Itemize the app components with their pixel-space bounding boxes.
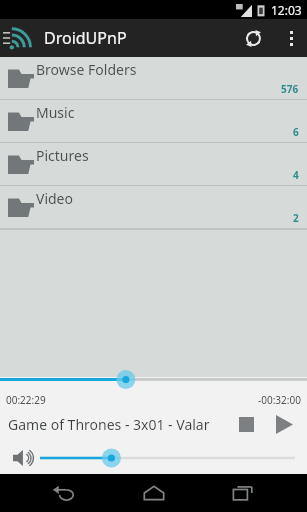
button[interactable]: Browse Folders (0, 57, 307, 100)
button[interactable]: Volume slider (40, 445, 295, 471)
staticText: Pictures (36, 146, 89, 165)
button[interactable]: Refresh (231, 19, 275, 57)
button[interactable]: Volume (8, 442, 40, 474)
button[interactable]: Seek bar (0, 377, 307, 393)
button[interactable]: Pictures (0, 143, 307, 186)
staticText: Music (36, 103, 75, 122)
button[interactable]: Open navigation drawer (0, 19, 40, 57)
button[interactable]: Back (38, 474, 90, 512)
button[interactable]: Home (128, 474, 180, 512)
button[interactable]: Video (0, 186, 307, 229)
staticText: 12:03 (271, 2, 302, 18)
staticText: DroidUPnP (44, 27, 127, 49)
button[interactable]: Stop (229, 407, 263, 441)
staticText: 00:22:29 (6, 393, 46, 407)
staticText: 576 (281, 82, 299, 96)
button[interactable]: Play (267, 407, 301, 441)
staticText: -00:32:00 (258, 393, 301, 407)
button[interactable]: Recent apps (217, 474, 269, 512)
staticText: Video (36, 189, 73, 208)
staticText: 4 (293, 168, 299, 182)
staticText: Browse Folders (36, 60, 137, 79)
button[interactable]: Music (0, 100, 307, 143)
button[interactable]: More options (275, 19, 307, 57)
staticText: 6 (293, 125, 299, 139)
staticText: Game of Thrones - 3x01 - Valar Dohaeris (8, 415, 229, 434)
staticText: 2 (293, 211, 299, 225)
